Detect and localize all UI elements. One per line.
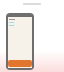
button[interactable]: [8, 60, 32, 67]
